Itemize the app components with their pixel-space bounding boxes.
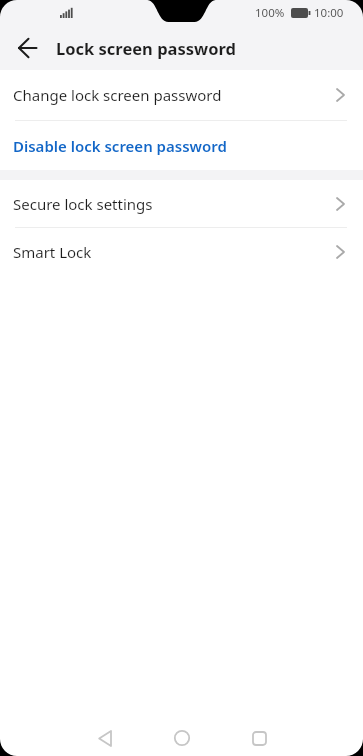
button[interactable]: Smart Lock: [0, 228, 363, 275]
button[interactable]: Change lock screen password: [0, 70, 363, 120]
staticText: Smart Lock: [13, 242, 336, 262]
staticText: Lock screen password: [56, 37, 236, 59]
button[interactable]: Secure lock settings: [0, 180, 363, 227]
button[interactable]: [97, 729, 113, 747]
staticText: Disable lock screen password: [13, 136, 227, 156]
button[interactable]: [251, 729, 267, 747]
staticText: 100%: [255, 5, 285, 21]
staticText: 10:00: [314, 5, 344, 21]
staticText: Change lock screen password: [13, 85, 336, 105]
button[interactable]: [15, 36, 39, 60]
staticText: Secure lock settings: [13, 194, 336, 214]
button[interactable]: [174, 729, 190, 747]
button[interactable]: Disable lock screen password: [0, 121, 363, 170]
